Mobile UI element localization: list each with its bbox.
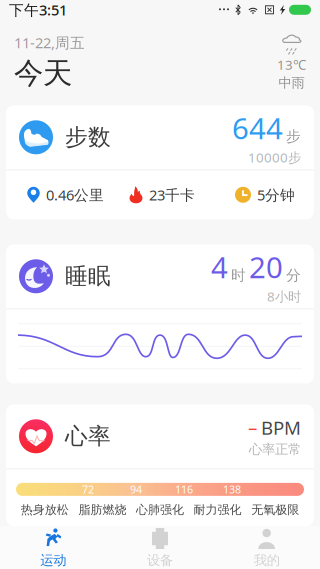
staticText: 脂肪燃烧 [78,502,126,517]
staticText: 10000步 [248,148,301,166]
staticText: 步 [286,127,301,145]
staticText: 20 [249,247,283,286]
button[interactable]: 设备 [107,523,213,569]
staticText: 心率 [65,422,111,450]
button[interactable]: 运动 [0,523,107,569]
staticText: 运动 [40,552,66,568]
staticText: 5分钟 [257,185,295,205]
staticText: 8小时 [267,287,301,305]
staticText: 今天 [14,55,72,91]
staticText: 72 [82,482,94,496]
staticText: 耐力强化 [194,502,242,517]
staticText: 设备 [147,552,173,568]
staticText: 心肺强化 [136,502,184,517]
staticText: 心率正常 [249,441,301,457]
staticText: 94 [130,482,142,496]
staticText: 4 [211,247,228,286]
staticText: 23千卡 [149,185,195,205]
staticText: 我的 [254,552,280,568]
staticText: 睡眠 [65,262,111,290]
staticText: 116 [175,482,193,496]
staticText: 0.46公里 [46,185,104,205]
staticText: 步数 [65,123,111,151]
staticText: 11-22,周五 [14,33,85,52]
staticText: 下午3:51 [9,0,67,20]
staticText: 中雨 [278,74,304,91]
staticText: 644 [232,108,283,147]
staticText: BPM [261,415,301,440]
staticText: 13℃ [277,56,306,73]
staticText: 138 [223,482,241,496]
staticText: 分 [286,266,301,284]
staticText: – [248,415,257,440]
staticText: 时 [231,266,246,284]
staticText: 热身放松 [21,502,69,517]
button[interactable]: 我的 [213,523,320,569]
staticText: 无氧极限 [251,502,299,517]
